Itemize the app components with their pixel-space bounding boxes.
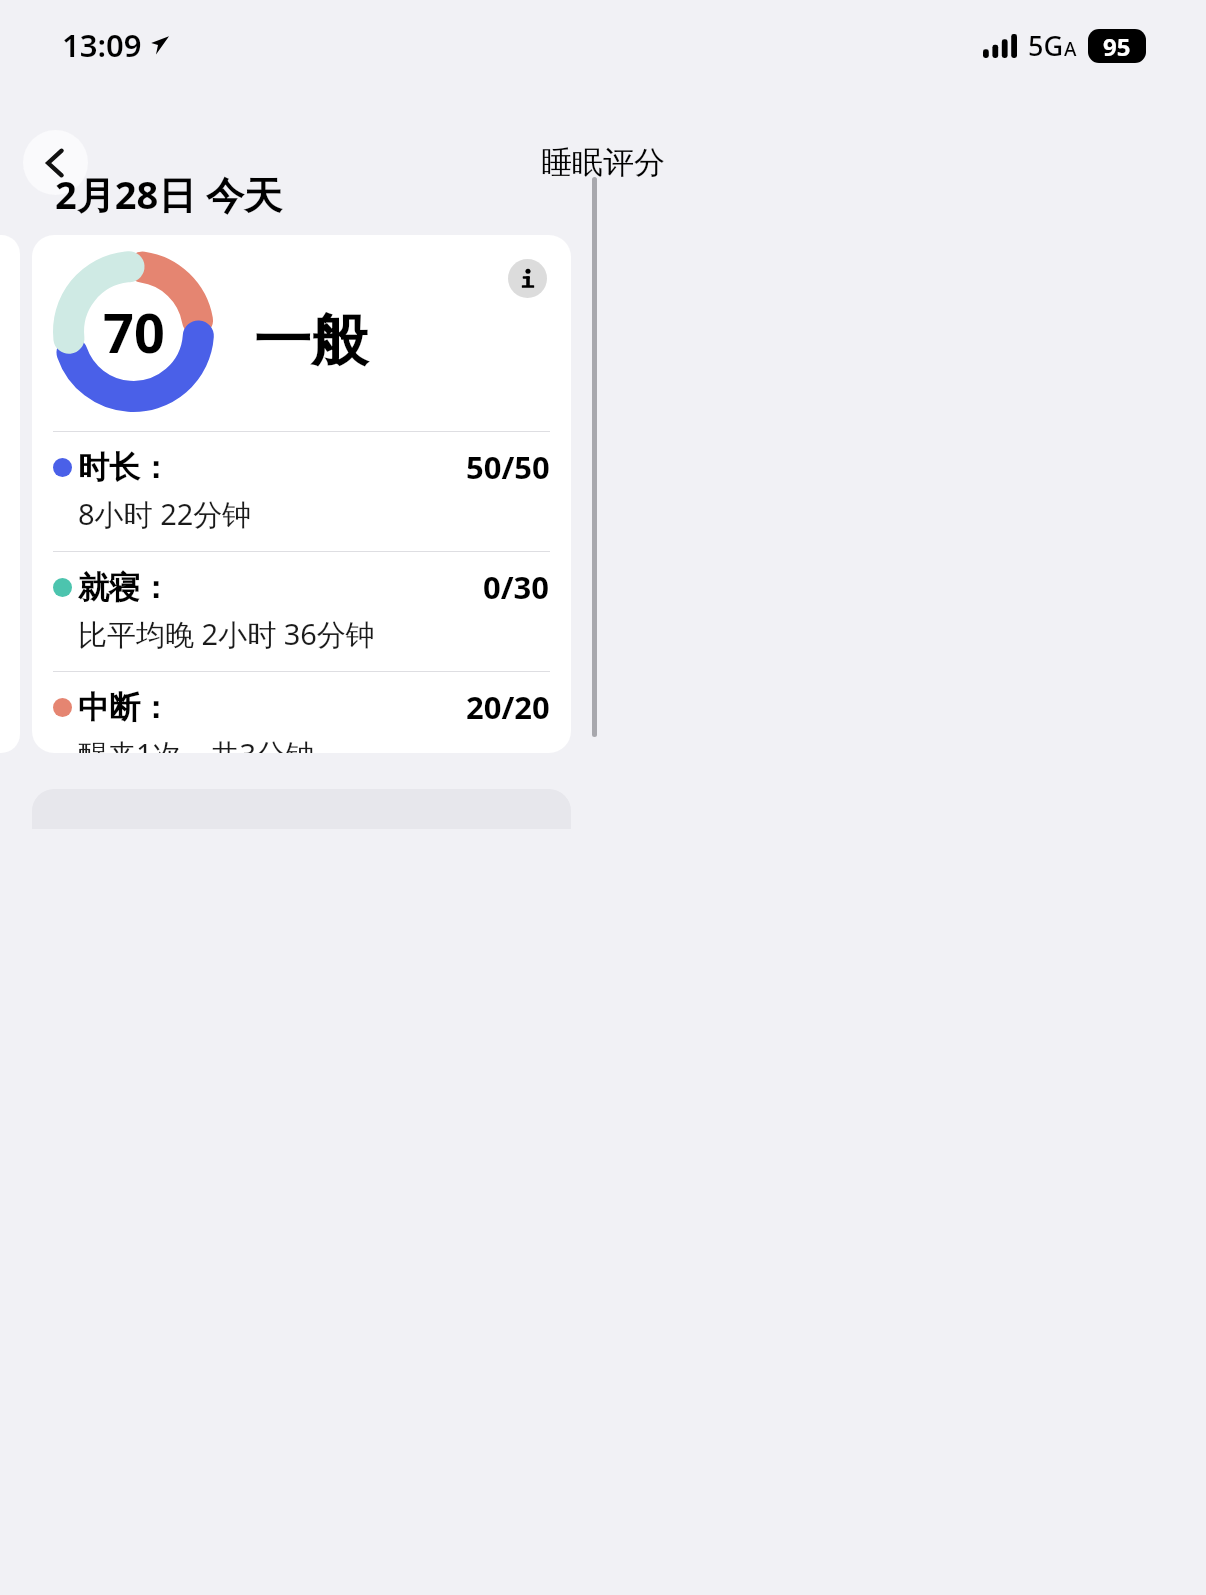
staticText: 13:09 bbox=[62, 24, 142, 66]
staticText: 一般 bbox=[254, 305, 368, 377]
button[interactable]: 中断： bbox=[53, 671, 550, 753]
staticText: 8小时 22分钟 bbox=[78, 494, 252, 534]
button[interactable]: 就寝： bbox=[53, 551, 550, 671]
staticText: 20/20 bbox=[466, 686, 550, 728]
staticText: 比平均晚 2小时 36分钟 bbox=[78, 614, 375, 654]
staticText: 就寝： bbox=[78, 568, 171, 607]
staticText: 95 bbox=[1103, 30, 1131, 63]
button[interactable]: Back bbox=[23, 130, 88, 195]
button[interactable]: 时长： bbox=[53, 431, 550, 551]
button[interactable]: Info bbox=[508, 259, 547, 298]
staticText: 5G bbox=[1028, 27, 1064, 64]
staticText: 2月28日 今天 bbox=[55, 168, 283, 220]
staticText: 时长： bbox=[78, 448, 171, 487]
staticText: 50/50 bbox=[466, 446, 550, 488]
staticText: 70 bbox=[103, 295, 165, 369]
staticText: 睡眠评分 bbox=[541, 143, 665, 182]
staticText: 醒来1次，共3分钟 bbox=[78, 734, 315, 753]
staticText: A bbox=[1064, 36, 1077, 62]
staticText: 中断： bbox=[78, 688, 171, 727]
staticText: 0/30 bbox=[483, 566, 550, 608]
